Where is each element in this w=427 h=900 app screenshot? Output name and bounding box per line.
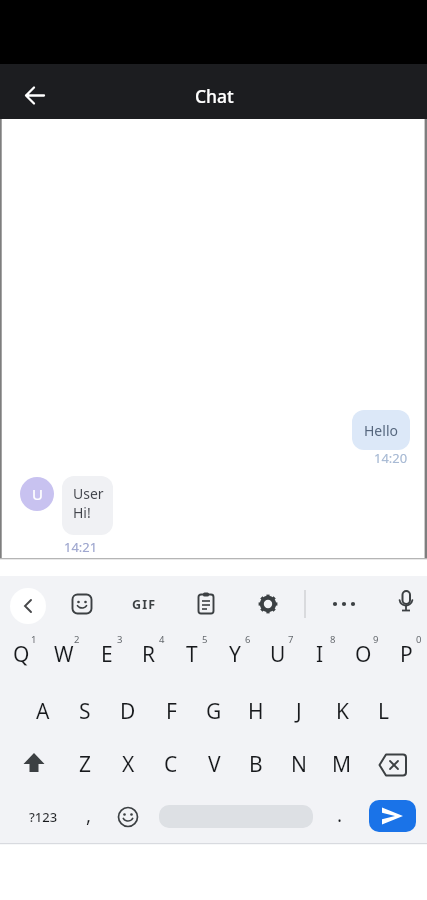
staticText: V (208, 750, 221, 779)
button[interactable] (14, 744, 54, 784)
staticText: Chat (195, 84, 234, 108)
button[interactable]: B (235, 739, 277, 789)
button[interactable]: Y (214, 629, 256, 679)
button[interactable]: Hello (352, 410, 410, 450)
button[interactable] (369, 800, 416, 832)
staticText: 9 (373, 633, 379, 646)
staticText: User (73, 484, 104, 503)
button[interactable] (394, 589, 418, 617)
staticText: Hello (364, 421, 398, 440)
staticText: GIF (132, 596, 157, 613)
button[interactable] (330, 592, 358, 616)
staticText: 3 (117, 633, 123, 646)
button[interactable]: P (385, 629, 427, 679)
staticText: X (122, 750, 135, 779)
button[interactable]: C (150, 739, 192, 789)
staticText: C (164, 750, 178, 779)
staticText: F (166, 697, 177, 726)
button[interactable]: . (327, 795, 353, 835)
button[interactable]: R (128, 629, 170, 679)
staticText: M (332, 750, 352, 779)
staticText: 5 (202, 633, 208, 646)
staticText: 2 (74, 633, 80, 646)
staticText: G (206, 697, 222, 726)
staticText: N (291, 750, 307, 779)
button[interactable]: F (150, 686, 192, 736)
button[interactable] (10, 588, 46, 624)
button[interactable]: , (76, 795, 102, 835)
button[interactable]: H (235, 686, 277, 736)
button[interactable]: V (193, 739, 235, 789)
staticText: W (54, 640, 74, 669)
staticText: S (79, 697, 91, 726)
button[interactable] (194, 591, 219, 616)
button[interactable]: A (22, 686, 64, 736)
staticText: U (270, 640, 286, 669)
staticText: 14:20 (374, 449, 408, 467)
staticText: U (32, 484, 43, 504)
staticText: Z (79, 750, 92, 779)
button[interactable]: L (363, 686, 405, 736)
button[interactable]: T (171, 629, 213, 679)
staticText: 4 (159, 633, 165, 646)
staticText: D (120, 697, 136, 726)
button[interactable]: E (86, 629, 128, 679)
staticText: A (36, 697, 50, 726)
button[interactable]: J (278, 686, 320, 736)
staticText: B (249, 750, 263, 779)
staticText: ?123 (29, 808, 58, 826)
button[interactable]: K (321, 686, 363, 736)
button[interactable]: G (193, 686, 235, 736)
staticText: E (101, 640, 113, 669)
staticText: Hi! (73, 503, 91, 522)
staticText: T (186, 640, 198, 669)
button[interactable] (159, 805, 313, 828)
staticText: 7 (288, 633, 294, 646)
button[interactable]: User (62, 476, 113, 535)
staticText: 1 (31, 633, 37, 646)
button[interactable]: S (64, 686, 106, 736)
staticText: Q (13, 640, 30, 669)
staticText: 8 (330, 633, 336, 646)
button[interactable]: O (342, 629, 384, 679)
staticText: K (336, 697, 349, 726)
button[interactable] (373, 745, 413, 785)
staticText: Y (229, 640, 241, 669)
button[interactable]: GIF (121, 589, 167, 619)
button[interactable]: U (257, 629, 299, 679)
staticText: O (355, 640, 372, 669)
button[interactable]: X (107, 739, 149, 789)
button[interactable]: Q (0, 629, 42, 679)
button[interactable]: M (321, 739, 363, 789)
button[interactable] (115, 804, 141, 830)
button[interactable]: ?123 (16, 797, 70, 837)
staticText: P (400, 640, 413, 669)
staticText: 0 (416, 633, 422, 646)
button[interactable] (70, 592, 94, 616)
staticText: J (296, 697, 302, 726)
staticText: , (86, 802, 92, 828)
staticText: L (378, 697, 390, 726)
staticText: R (142, 640, 156, 669)
staticText: H (248, 697, 264, 726)
button[interactable]: W (43, 629, 85, 679)
button[interactable]: D (107, 686, 149, 736)
staticText: 6 (245, 633, 251, 646)
staticText: 14:21 (64, 538, 98, 556)
staticText: I (316, 640, 324, 669)
button[interactable] (256, 592, 280, 616)
button[interactable]: I (299, 629, 341, 679)
button[interactable]: N (278, 739, 320, 789)
button[interactable]: Z (64, 739, 106, 789)
button[interactable] (17, 77, 53, 113)
staticText: . (337, 802, 343, 828)
